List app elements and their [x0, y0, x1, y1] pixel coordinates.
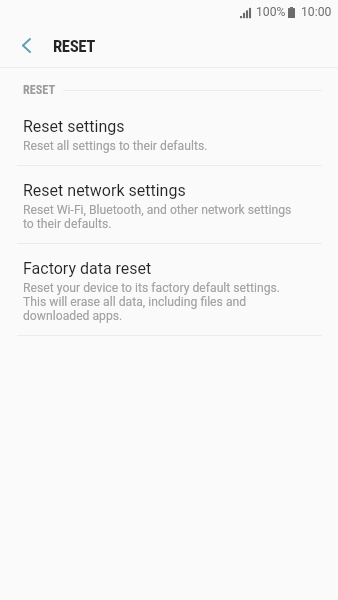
staticText: RESET [23, 83, 56, 97]
staticText: Reset all settings to their defaults. [23, 139, 208, 153]
staticText: Reset network settings [23, 181, 186, 200]
staticText: 10:00 [301, 5, 332, 19]
staticText: Reset your device to its factory default… [23, 281, 281, 323]
staticText: Factory data reset [23, 259, 152, 278]
button[interactable]: Navigate up [13, 32, 39, 58]
staticText: Reset settings [23, 117, 125, 136]
button[interactable]: Reset settings [0, 102, 338, 165]
button[interactable]: Reset network settings [0, 166, 338, 243]
staticText: RESET [53, 36, 95, 56]
staticText: Reset Wi-Fi, Bluetooth, and other networ… [23, 203, 292, 231]
button[interactable]: Factory data reset [0, 244, 338, 335]
staticText: 100% [256, 5, 286, 19]
